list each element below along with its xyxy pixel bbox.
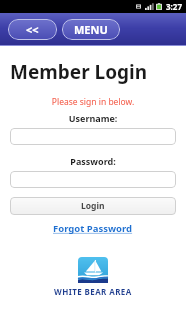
- staticText: Password:: [0, 155, 186, 167]
- button[interactable]: Login: [10, 197, 176, 215]
- staticText: <<: [26, 22, 39, 37]
- button[interactable]: Forgot Password: [0, 222, 186, 235]
- button[interactable]: [10, 128, 176, 145]
- staticText: 3:27: [166, 1, 182, 12]
- staticText: Username:: [0, 112, 186, 124]
- staticText: Forgot Password: [53, 222, 133, 235]
- button[interactable]: MENU: [62, 19, 120, 40]
- staticText: MENU: [74, 22, 108, 37]
- staticText: Login: [81, 200, 105, 212]
- staticText: Please sign in below.: [0, 96, 186, 108]
- button[interactable]: Back: [8, 19, 57, 40]
- button[interactable]: [10, 171, 176, 188]
- staticText: Member Login: [10, 59, 148, 85]
- staticText: WHITE BEAR AREA: [54, 286, 132, 297]
